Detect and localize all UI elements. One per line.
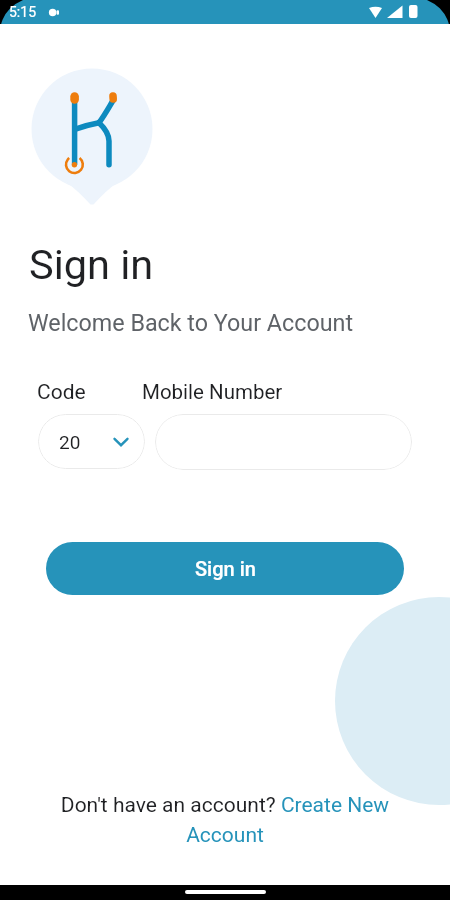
staticText: 5:15: [9, 4, 36, 20]
button[interactable]: 20: [38, 414, 145, 469]
button[interactable]: Sign in: [46, 542, 404, 595]
staticText: Sign in: [29, 240, 154, 289]
staticText: 20: [59, 431, 81, 453]
staticText: Code: [37, 380, 86, 405]
staticText: Mobile Number: [142, 380, 283, 404]
button[interactable]: Don't have an account? Create New Accoun…: [45, 793, 405, 847]
staticText: Welcome Back to Your Account: [28, 309, 354, 336]
button[interactable]: Mobile Number input: [155, 414, 412, 470]
staticText: Sign in: [195, 557, 256, 580]
